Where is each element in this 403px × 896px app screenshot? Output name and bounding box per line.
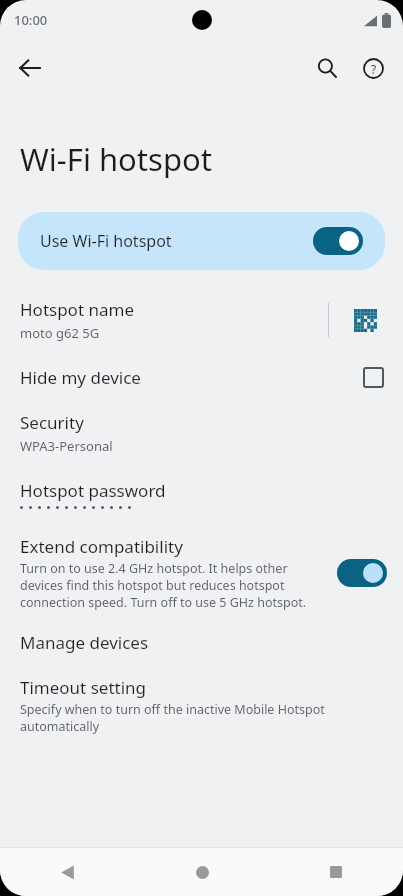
button[interactable]: Hotspot password <box>0 479 403 509</box>
staticText: Timeout setting <box>20 676 147 699</box>
button[interactable]: Recent apps <box>269 848 403 896</box>
button[interactable]: Hotspot name <box>0 298 403 342</box>
staticText: Manage devices <box>20 631 149 654</box>
staticText: Hide my device <box>20 366 364 389</box>
staticText: Specify when to turn off the inactive Mo… <box>20 701 343 735</box>
staticText: WPA3-Personal <box>20 437 113 455</box>
button[interactable]: Hide my device <box>0 366 403 389</box>
button[interactable]: Back <box>0 848 135 896</box>
staticText: Wi-Fi hotspot <box>20 138 212 180</box>
button[interactable]: Use Wi-Fi hotspot <box>18 212 385 270</box>
button[interactable]: Home <box>135 848 269 896</box>
staticText: Use Wi-Fi hotspot <box>40 230 313 252</box>
button[interactable]: Security <box>0 411 403 455</box>
staticText: Security <box>20 411 84 434</box>
button[interactable]: Timeout setting <box>0 676 403 735</box>
button[interactable]: Back <box>8 46 52 90</box>
staticText: Hotspot name <box>20 298 134 321</box>
button[interactable]: Search <box>305 46 349 90</box>
staticText: 10:00 <box>14 11 48 29</box>
button[interactable]: Extend compatibility <box>0 535 403 611</box>
button[interactable]: Help <box>351 46 395 90</box>
staticText: Turn on to use 2.4 GHz hotspot. It helps… <box>20 560 325 611</box>
button[interactable]: Share hotspot QR code <box>343 298 387 342</box>
staticText: ? <box>371 61 377 77</box>
staticText: Hotspot password <box>20 479 166 502</box>
button[interactable]: Manage devices <box>0 631 403 654</box>
staticText: Extend compatibility <box>20 535 183 558</box>
staticText: moto g62 5G <box>20 324 100 342</box>
